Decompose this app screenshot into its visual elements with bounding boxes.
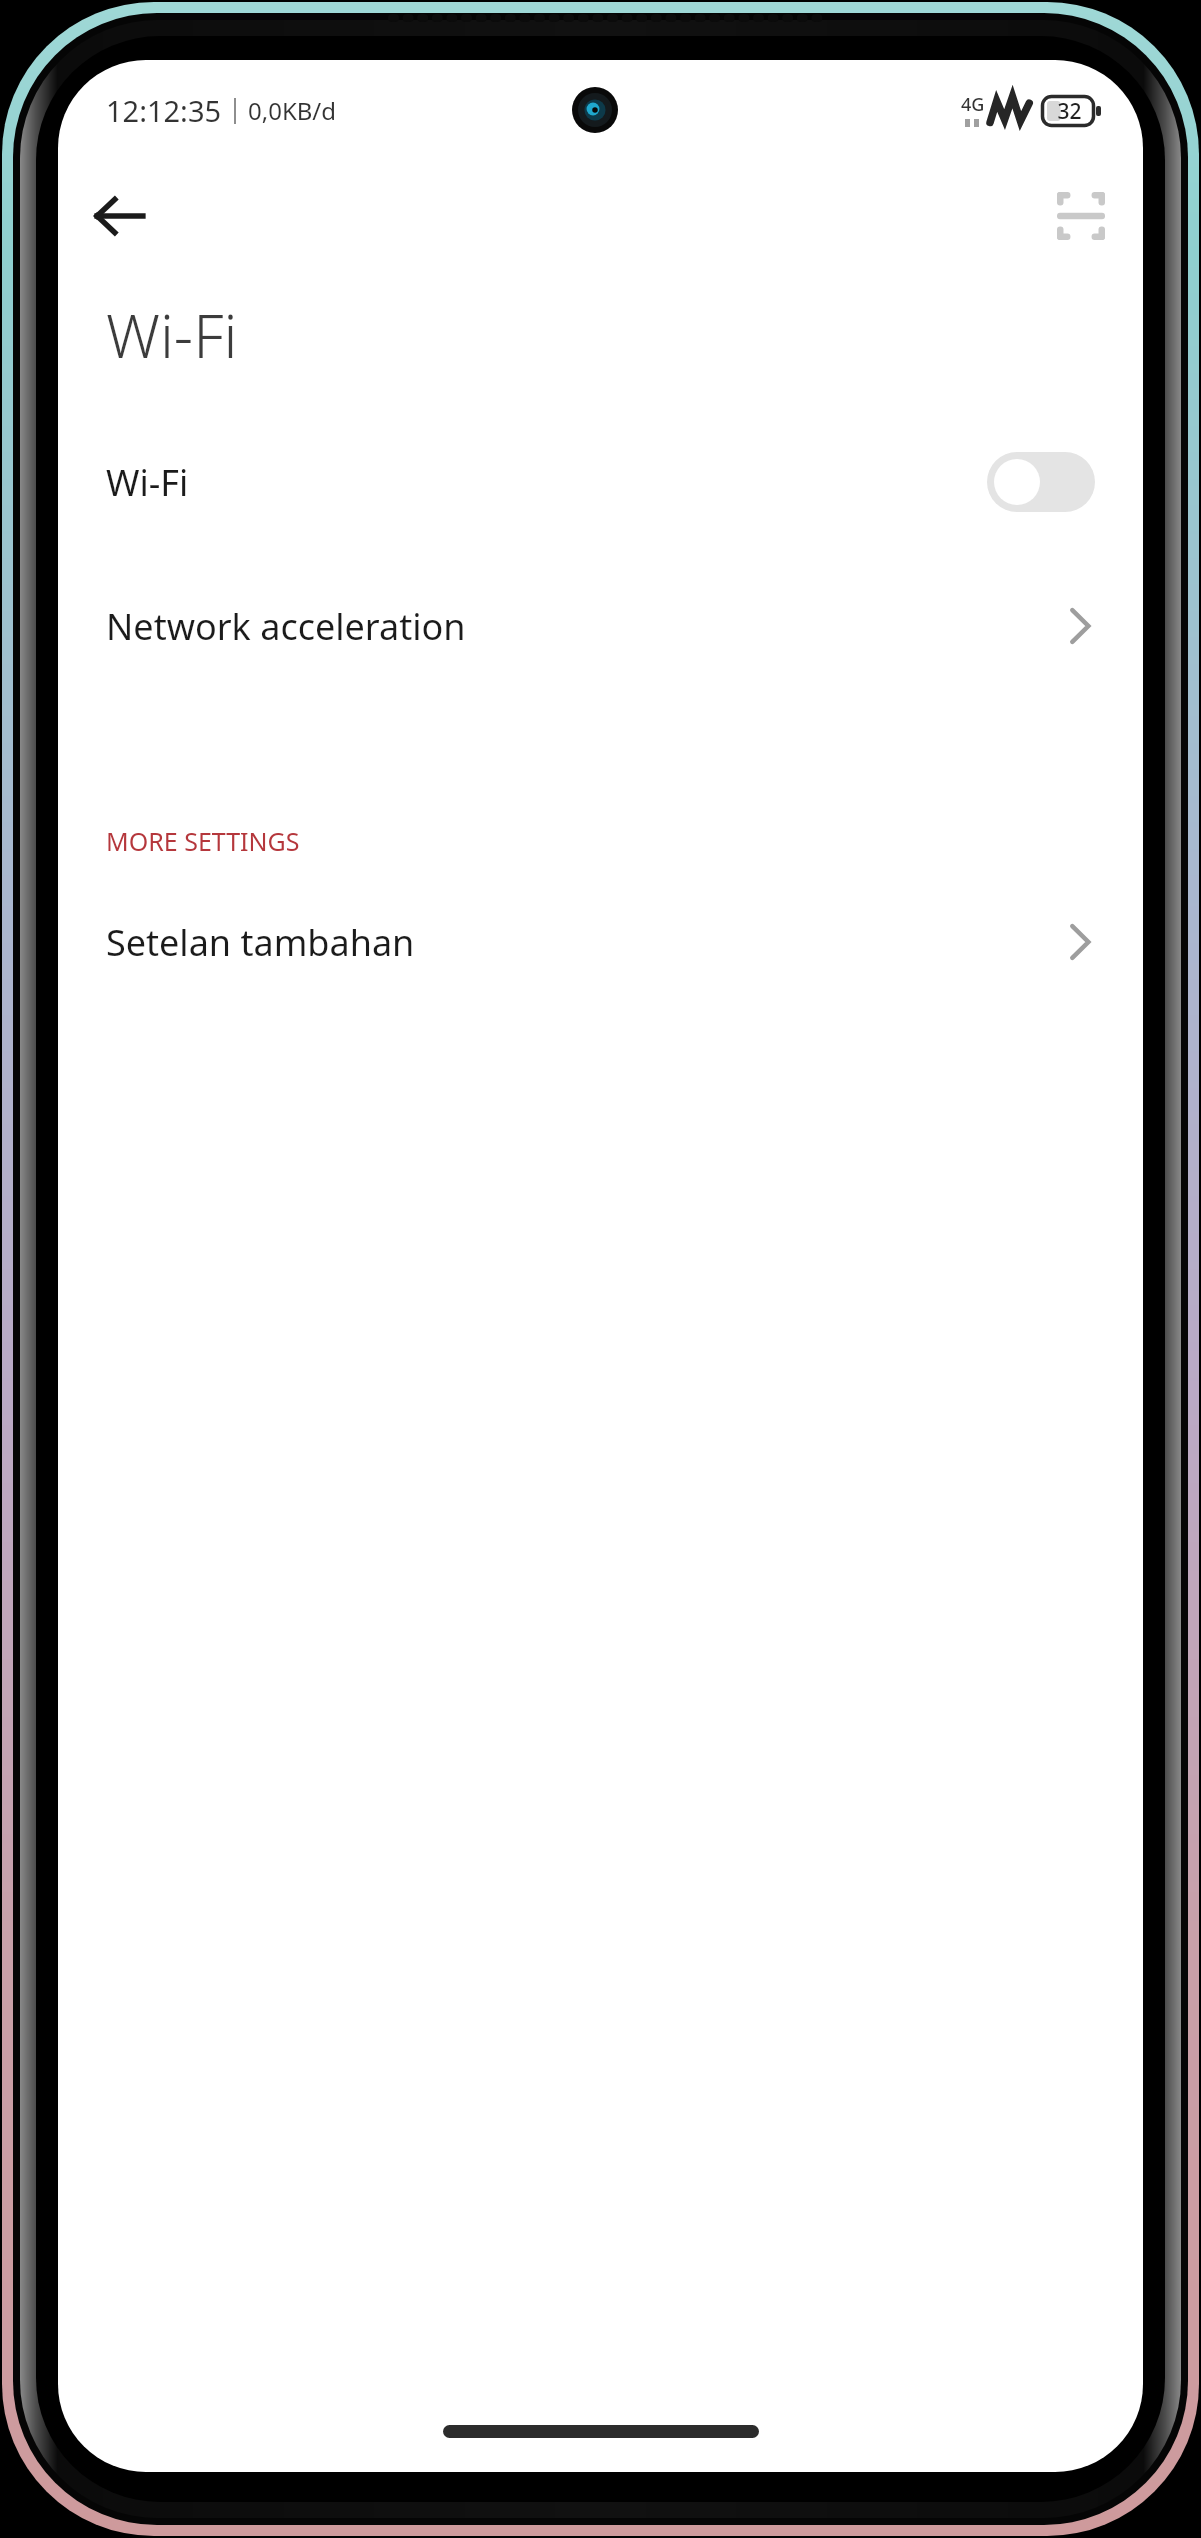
button[interactable]: Scan QR code: [1037, 172, 1125, 260]
staticText: 4G: [961, 92, 985, 117]
staticText: Wi-Fi: [106, 294, 238, 376]
button[interactable]: Back: [76, 172, 164, 260]
button[interactable]: Setelan tambahan: [58, 894, 1143, 990]
staticText: 0,0KB/d: [248, 94, 337, 127]
button[interactable]: Network acceleration: [58, 578, 1143, 674]
button[interactable]: Wi-Fi: [58, 434, 1143, 530]
staticText: Setelan tambahan: [106, 918, 415, 967]
staticText: Wi-Fi: [106, 458, 189, 507]
staticText: 12:12:35: [106, 91, 222, 130]
staticText: 32: [1057, 97, 1082, 126]
staticText: Network acceleration: [106, 602, 466, 651]
staticText: MORE SETTINGS: [106, 824, 300, 858]
